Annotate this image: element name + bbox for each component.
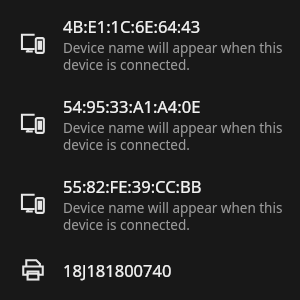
staticText: 4B:E1:1C:6E:64:43 (63, 15, 201, 37)
button[interactable]: Device (0, 168, 300, 240)
other: Printer (18, 255, 48, 285)
button[interactable]: Printer (0, 248, 300, 292)
other: Device (18, 109, 48, 139)
staticText: 55:82:FE:39:CC:BB (63, 175, 202, 197)
staticText: Device name will appear when this device… (63, 119, 290, 154)
other: Device (18, 189, 48, 219)
staticText: 18J181800740 (63, 259, 172, 281)
other: Device (18, 29, 48, 59)
button[interactable]: Device (0, 8, 300, 80)
button[interactable]: Device (0, 88, 300, 160)
staticText: 54:95:33:A1:A4:0E (63, 95, 201, 117)
staticText: Device name will appear when this device… (63, 39, 290, 74)
staticText: Device name will appear when this device… (63, 199, 290, 234)
